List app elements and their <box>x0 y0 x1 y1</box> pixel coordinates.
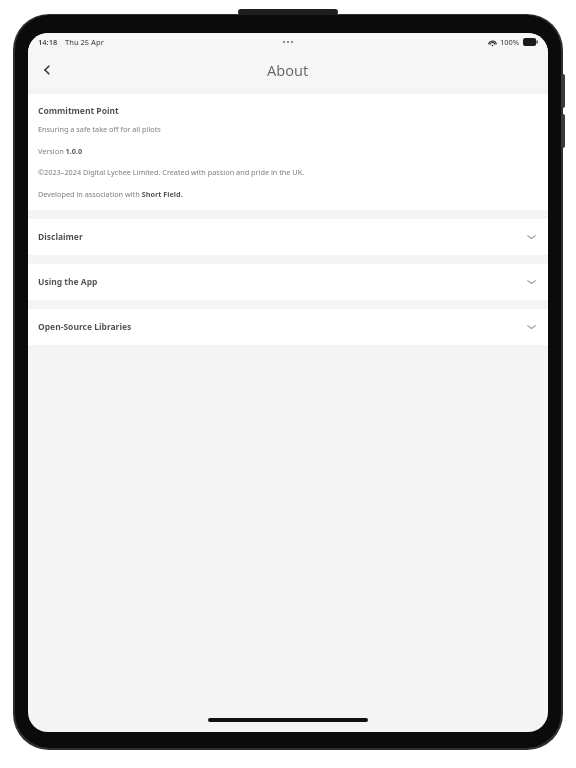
staticText: Developed in association with Short Fiel… <box>38 189 183 199</box>
staticText: Using the App <box>38 276 98 288</box>
button[interactable]: Disclaimer <box>28 219 548 255</box>
staticText: 100% <box>500 37 520 47</box>
staticText: Thu 25 Apr <box>65 37 104 47</box>
button[interactable]: Using the App <box>28 264 548 300</box>
staticText: ©2023–2024 Digital Lychee Limited. Creat… <box>38 167 305 177</box>
button[interactable]: Open-Source Libraries <box>28 309 548 345</box>
button[interactable]: Back <box>32 55 62 85</box>
staticText: Disclaimer <box>38 231 83 243</box>
staticText: Commitment Point <box>38 105 119 117</box>
staticText: 14:18 <box>38 37 58 47</box>
staticText: Ensuring a safe take off for all pilots <box>38 124 161 134</box>
staticText: Open-Source Libraries <box>38 321 132 333</box>
staticText: Version 1.0.0 <box>38 146 83 156</box>
staticText: About <box>267 60 309 80</box>
